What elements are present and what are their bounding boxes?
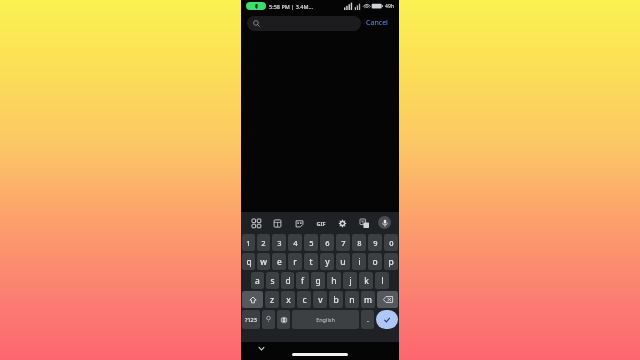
button[interactable]: c (297, 291, 311, 308)
button[interactable]: 8 (352, 234, 366, 251)
button[interactable]: Backspace (377, 291, 398, 308)
staticText: m (364, 294, 372, 306)
button[interactable]: GIF (314, 216, 328, 230)
button[interactable]: a (251, 272, 264, 289)
button[interactable]: ?123 (242, 310, 260, 329)
button[interactable]: Voice input (378, 216, 391, 229)
staticText: 9 (373, 238, 378, 248)
staticText: u (340, 256, 346, 268)
button[interactable]: r (288, 253, 302, 270)
staticText: 5:58 PM | 3.4M… (269, 3, 313, 10)
button[interactable]: 0 (384, 234, 398, 251)
button[interactable]: 7 (336, 234, 350, 251)
staticText: h (331, 275, 337, 287)
button[interactable]: z (265, 291, 279, 308)
button[interactable]: w (257, 253, 270, 270)
staticText: o (372, 256, 378, 268)
button[interactable]: 5 (304, 234, 318, 251)
staticText: English (316, 316, 335, 323)
button[interactable]: o (368, 253, 382, 270)
staticText: s (270, 275, 275, 287)
staticText: z (270, 294, 274, 306)
staticText: p (388, 256, 394, 268)
staticText: 49h (385, 3, 394, 10)
button[interactable]: e (272, 253, 286, 270)
staticText: d (285, 275, 291, 287)
button[interactable]: v (313, 291, 327, 308)
button[interactable]: Translate (357, 216, 371, 230)
button[interactable]: y (320, 253, 334, 270)
staticText: w (260, 256, 267, 268)
button[interactable]: 4 (288, 234, 302, 251)
staticText: q (246, 256, 252, 268)
staticText: 0 (389, 238, 394, 248)
staticText: 2 (261, 238, 266, 248)
staticText: 3 (277, 238, 282, 248)
staticText: t (309, 256, 313, 268)
button[interactable]: g (311, 272, 325, 289)
button[interactable]: 1 (242, 234, 255, 251)
staticText: f (301, 275, 304, 287)
staticText: j (349, 275, 352, 287)
staticText: 5 (309, 238, 314, 248)
staticText: 8 (357, 238, 362, 248)
button[interactable]: t (304, 253, 318, 270)
staticText: c (302, 294, 307, 306)
button[interactable]: 3 (272, 234, 286, 251)
staticText: 7 (341, 238, 346, 248)
button[interactable]: Enter (376, 310, 398, 329)
button[interactable]: Emoji (277, 310, 290, 329)
button[interactable]: k (359, 272, 373, 289)
staticText: i (358, 256, 361, 268)
button[interactable]: English (292, 310, 359, 329)
button[interactable]: f (296, 272, 309, 289)
button[interactable]: j (343, 272, 357, 289)
button[interactable]: Stickers (292, 216, 306, 230)
button[interactable]: . (361, 310, 374, 329)
staticText: 4 (293, 238, 298, 248)
staticText: g (315, 275, 321, 287)
button[interactable]: 2 (257, 234, 270, 251)
staticText: b (333, 294, 339, 306)
button[interactable]: q (242, 253, 255, 270)
staticText: x (286, 294, 291, 306)
button[interactable]: d (281, 272, 294, 289)
button[interactable]: Comma (262, 310, 275, 329)
staticText: 6 (325, 238, 330, 248)
button[interactable]: 6 (320, 234, 334, 251)
button[interactable]: u (336, 253, 350, 270)
staticText: e (277, 256, 282, 268)
button[interactable]: Hide keyboard (255, 342, 267, 354)
button[interactable]: m (361, 291, 375, 308)
staticText: Cancel (366, 18, 388, 28)
button[interactable]: s (266, 272, 279, 289)
staticText: n (349, 294, 355, 306)
staticText: 1 (246, 238, 251, 248)
button[interactable]: h (327, 272, 341, 289)
button[interactable]: p (384, 253, 398, 270)
staticText: k (364, 275, 369, 287)
button[interactable]: n (345, 291, 359, 308)
button[interactable]: Keyboard modes (249, 216, 263, 230)
staticText: GIF (316, 220, 326, 227)
button[interactable]: i (352, 253, 366, 270)
staticText: v (318, 294, 323, 306)
button[interactable]: Shift (242, 291, 263, 308)
button[interactable]: Cancel (361, 15, 393, 31)
button[interactable]: x (281, 291, 295, 308)
staticText: ?123 (245, 316, 257, 323)
staticText: r (293, 256, 297, 268)
staticText: a (255, 275, 260, 287)
staticText: . (367, 315, 369, 325)
button[interactable]: Settings (335, 216, 349, 230)
button[interactable]: Clipboard (270, 216, 284, 230)
staticText: l (381, 275, 384, 287)
button[interactable]: l (375, 272, 389, 289)
button[interactable]: 9 (368, 234, 382, 251)
staticText: y (325, 256, 330, 268)
button[interactable]: b (329, 291, 343, 308)
button[interactable] (247, 16, 361, 31)
